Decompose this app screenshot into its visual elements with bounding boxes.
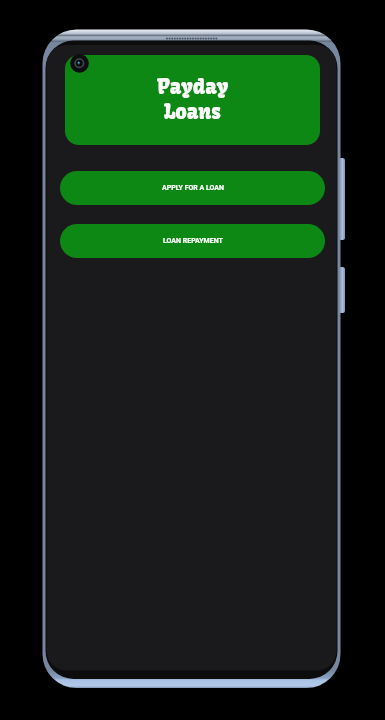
staticText: APPLY FOR A LOAN xyxy=(162,184,224,192)
staticText: LOAN REPAYMENT xyxy=(163,237,223,245)
button[interactable]: APPLY FOR A LOAN xyxy=(60,171,325,205)
staticText: Payday xyxy=(157,74,229,99)
button[interactable]: LOAN REPAYMENT xyxy=(60,224,325,258)
staticText: Loans xyxy=(164,99,221,124)
